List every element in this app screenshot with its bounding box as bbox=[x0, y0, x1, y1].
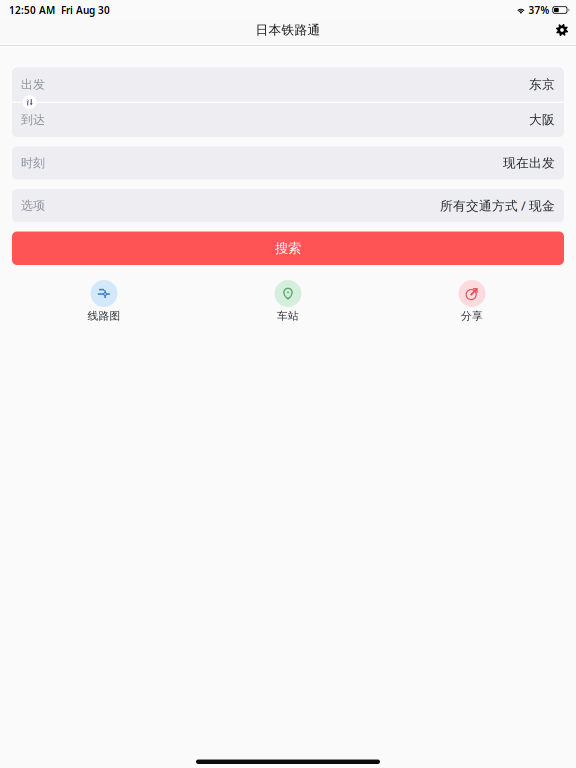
staticText: 线路图 bbox=[87, 309, 120, 323]
staticText: 所有交通方式 / 现金 bbox=[440, 197, 555, 214]
staticText: 37% bbox=[525, 3, 552, 17]
staticText: 日本铁路通 bbox=[255, 22, 320, 38]
staticText: 选项 bbox=[21, 198, 45, 213]
button[interactable]: 出发 bbox=[12, 67, 564, 102]
staticText: 时刻 bbox=[21, 156, 45, 170]
staticText: 搜索 bbox=[275, 240, 301, 256]
button[interactable]: 时刻 bbox=[12, 146, 564, 179]
staticText: 12:50 AM bbox=[9, 3, 55, 17]
staticText: 到达 bbox=[21, 112, 45, 127]
button[interactable]: Settings bbox=[548, 17, 576, 42]
staticText: Fri Aug 30 bbox=[55, 3, 110, 17]
button[interactable]: 搜索 bbox=[12, 231, 564, 265]
staticText: 大阪 bbox=[529, 112, 555, 128]
staticText: 车站 bbox=[277, 309, 299, 323]
button[interactable]: 车站 bbox=[196, 280, 380, 323]
staticText: 东京 bbox=[529, 77, 555, 92]
button[interactable]: 线路图 bbox=[12, 280, 196, 323]
button[interactable]: 分享 bbox=[380, 280, 564, 323]
staticText: 现在出发 bbox=[503, 155, 555, 171]
staticText: 出发 bbox=[21, 77, 45, 92]
button[interactable]: 到达 bbox=[12, 103, 564, 137]
button[interactable]: Swap origin and destination bbox=[18, 91, 40, 113]
button[interactable]: 选项 bbox=[12, 189, 564, 222]
staticText: 分享 bbox=[461, 309, 483, 323]
